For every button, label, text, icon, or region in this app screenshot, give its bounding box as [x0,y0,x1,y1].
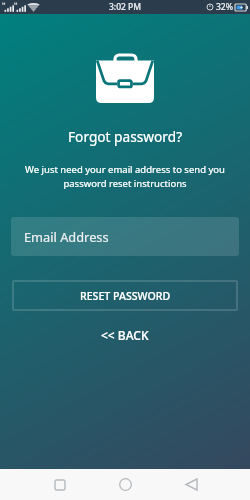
staticText: Forgot password? [68,127,183,146]
button[interactable]: Recents [45,469,75,500]
button[interactable]: Back [176,469,206,500]
staticText: RESET PASSWORD [80,289,171,303]
button[interactable]: << BACK [83,321,167,349]
button[interactable]: Email Address [11,217,239,256]
staticText: << BACK [101,327,149,343]
staticText: We just need your email address to send … [25,163,225,190]
button[interactable]: RESET PASSWORD [12,280,238,311]
staticText: 32% [216,1,233,13]
staticText: 3:02 PM [109,1,142,13]
staticText: Email Address [24,228,109,245]
button[interactable]: Home [110,469,140,500]
